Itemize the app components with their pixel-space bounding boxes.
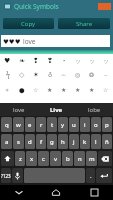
button[interactable]: ∼ [57,67,71,82]
button[interactable]: j [69,134,79,149]
button[interactable]: Back [0,185,37,200]
staticText: w [16,121,21,129]
button[interactable]: • [57,55,71,67]
button[interactable]: c [38,151,49,166]
button[interactable]: z [15,151,25,166]
button[interactable]: ★ [71,82,85,97]
button[interactable]: ◎ [71,67,85,82]
button[interactable]: ❧ [15,55,29,67]
button[interactable]: ñ [102,134,112,149]
staticText: ❣ [47,57,53,65]
staticText: ✶ [5,87,10,93]
staticText: p [105,121,109,129]
button[interactable]: b [62,151,73,166]
staticText: k [83,138,87,146]
staticText: ❂ [89,71,95,78]
staticText: ☆ [103,86,109,93]
button[interactable]: Live [37,103,75,116]
staticText: u [72,121,76,129]
button[interactable]: ⬤ [15,82,29,97]
button[interactable]: Recents [75,185,113,200]
button[interactable]: y [58,117,68,132]
staticText: ♥ [4,57,11,65]
button[interactable]: ♁ [43,67,57,82]
staticText: v [54,155,58,163]
button[interactable]: a [1,134,12,149]
button[interactable]: ☆ [29,82,43,97]
button[interactable]: Share [58,18,110,29]
button[interactable]: ッ [99,55,113,67]
button[interactable]: ★ [43,82,57,97]
staticText: ★ [61,86,67,93]
button[interactable]: ☆ [99,82,113,97]
button[interactable]: o [91,117,101,132]
button[interactable]: d [25,134,35,149]
staticText: ☆ [33,86,39,93]
button[interactable]: ッ [71,55,85,67]
staticText: ◎ [75,71,81,78]
staticText: d [28,138,32,146]
button[interactable]: ❂ [85,67,99,82]
button[interactable]: . [86,168,95,183]
button[interactable]: ~ [99,67,113,82]
staticText: h [61,138,65,146]
staticText: ◇ [19,71,25,79]
staticText: ?123 [1,173,11,179]
staticText: f [40,138,43,146]
button[interactable]: ?123 [1,168,11,183]
staticText: love [23,37,36,46]
button[interactable]: Backspace [98,151,112,166]
button[interactable]: love [0,103,37,116]
button[interactable]: p [102,117,112,132]
button[interactable]: i [80,117,90,132]
button[interactable]: r [36,117,46,132]
staticText: a [5,138,9,146]
staticText: • [63,57,66,65]
staticText: ッ [89,57,96,65]
staticText: ✶ [33,71,39,79]
button[interactable]: Enter [96,168,112,183]
button[interactable]: n [74,151,85,166]
button[interactable]: v [50,151,61,166]
staticText: Live [50,106,63,114]
staticText: ❢ [33,57,39,65]
button[interactable]: ❣ [43,55,57,67]
button[interactable]: ★ [57,82,71,97]
button[interactable]: k [80,134,90,149]
button[interactable]: ♥♥♥ [1,35,110,47]
button[interactable]: Home [37,185,75,200]
button[interactable]: m [86,151,97,166]
button[interactable]: g [47,134,57,149]
button[interactable]: s [13,134,24,149]
button[interactable]: ♥ [0,55,15,67]
button[interactable]: u [69,117,79,132]
button[interactable]: ϟ [0,67,15,82]
button[interactable]: q [1,117,12,132]
staticText: g [50,138,54,146]
button[interactable]: x [26,151,37,166]
staticText: e [28,121,32,129]
button[interactable]: Copy [3,18,54,29]
button[interactable]: ✶ [29,67,43,82]
button[interactable]: f [36,134,46,149]
staticText: . [90,172,92,180]
button[interactable]: h [58,134,68,149]
staticText: c [42,155,45,163]
staticText: Quick Symbols [14,2,59,11]
button[interactable]: ッ [85,55,99,67]
button[interactable]: Voice input [12,168,23,183]
button[interactable]: w [13,117,24,132]
button[interactable]: ★ [85,82,99,97]
button[interactable]: ◇ [15,67,29,82]
button[interactable]: Shift [1,151,14,166]
button[interactable]: t [47,117,57,132]
button[interactable]: ❢ [29,55,43,67]
staticText: m [89,155,95,163]
button[interactable]: e [25,117,35,132]
staticText: s [17,138,20,146]
button[interactable]: l [91,134,101,149]
button[interactable]: ✶ [0,82,15,97]
button[interactable]: lobe [75,103,113,116]
